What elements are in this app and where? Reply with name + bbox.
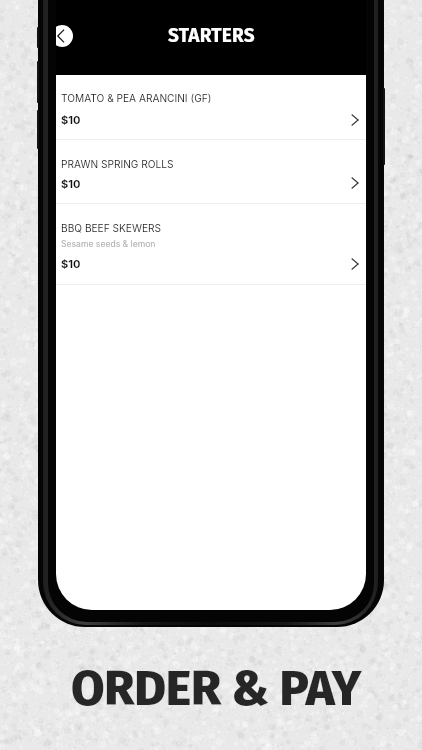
button[interactable]: Back: [56, 25, 73, 47]
staticText: $10: [61, 177, 81, 190]
staticText: TOMATO & PEA ARANCINI (GF): [61, 92, 212, 104]
staticText: $10: [61, 257, 81, 270]
staticText: Sesame seeds & lemon: [61, 239, 156, 249]
staticText: PRAWN SPRING ROLLS: [61, 158, 174, 170]
button[interactable]: TOMATO & PEA ARANCINI (GF): [56, 75, 366, 140]
staticText: STARTERS: [168, 24, 255, 47]
staticText: $10: [61, 113, 81, 126]
button[interactable]: BBQ BEEF SKEWERS: [56, 204, 366, 285]
staticText: BBQ BEEF SKEWERS: [61, 222, 162, 234]
button[interactable]: PRAWN SPRING ROLLS: [56, 140, 366, 204]
staticText: ORDER & PAY: [5, 660, 422, 718]
